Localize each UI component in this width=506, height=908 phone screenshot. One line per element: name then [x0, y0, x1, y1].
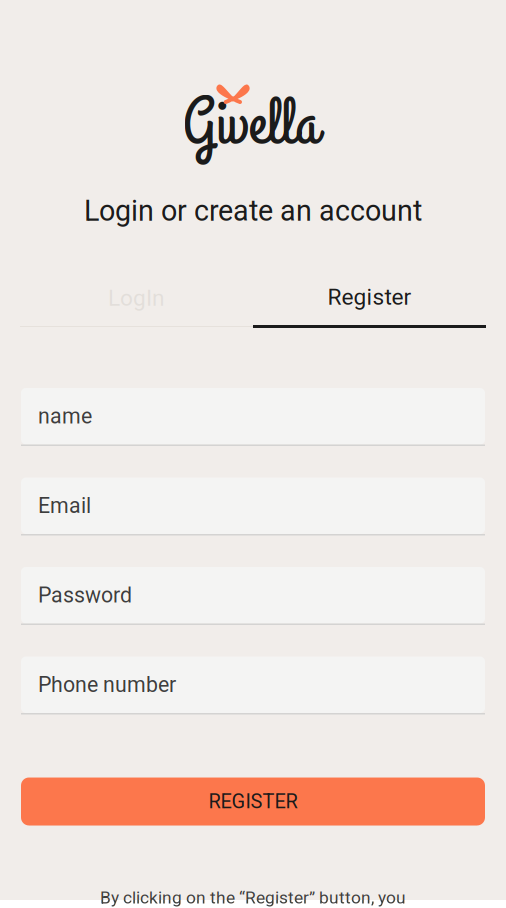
button[interactable]: REGISTER: [21, 777, 485, 825]
button[interactable]: Password: [21, 567, 485, 625]
staticText: Givella: [182, 80, 318, 169]
button[interactable]: name: [21, 388, 485, 446]
staticText: name: [38, 404, 92, 429]
staticText: Phone number: [38, 672, 176, 697]
staticText: Login or create an account: [84, 194, 422, 228]
staticText: Register: [327, 284, 411, 310]
staticText: Password: [38, 583, 132, 608]
staticText: REGISTER: [208, 790, 297, 813]
button[interactable]: Phone number: [21, 656, 485, 714]
button[interactable]: Register: [253, 275, 486, 328]
button[interactable]: Email: [21, 477, 485, 535]
staticText: By clicking on the “Register” button, yo…: [100, 887, 406, 908]
staticText: Email: [38, 493, 91, 518]
staticText: LogIn: [108, 285, 165, 311]
